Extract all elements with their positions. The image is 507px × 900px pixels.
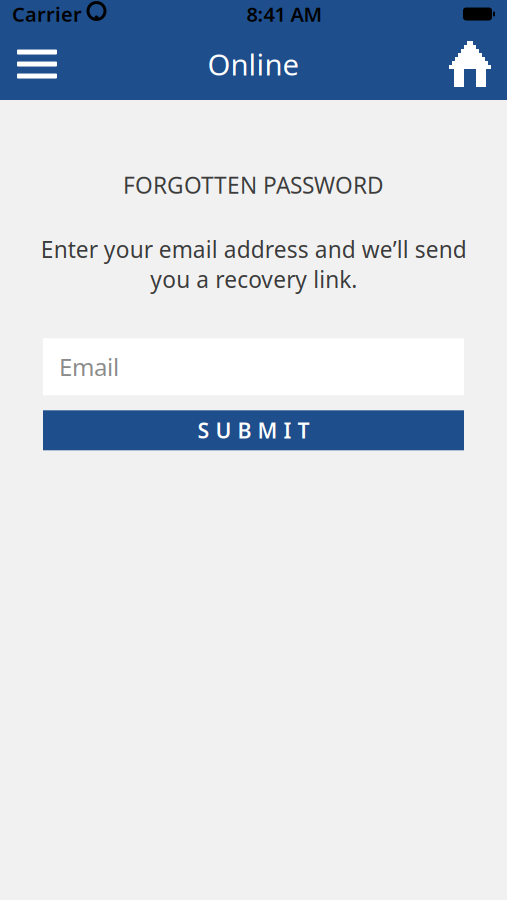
- staticText: Carrier: [12, 1, 82, 27]
- staticText: Email: [59, 351, 119, 383]
- button[interactable]: Menu: [4, 33, 70, 95]
- staticText: 8:41 AM: [246, 1, 322, 27]
- staticText: Online: [207, 44, 299, 83]
- button[interactable]: Home: [437, 33, 503, 95]
- staticText: S U B M I T: [197, 416, 309, 444]
- button[interactable]: S U B M I T: [43, 410, 464, 450]
- staticText: Enter your email address and we’ll send …: [40, 234, 466, 294]
- staticText: FORGOTTEN PASSWORD: [123, 170, 384, 200]
